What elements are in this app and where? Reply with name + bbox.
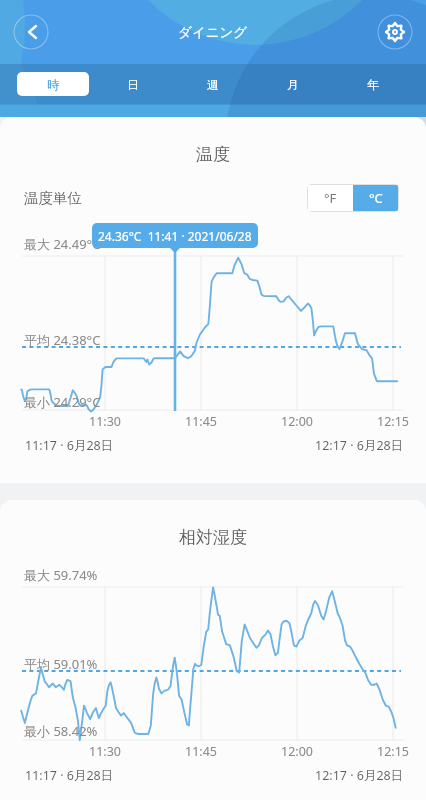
staticText: 11:45 <box>185 413 217 429</box>
button[interactable]: Back <box>13 14 49 50</box>
staticText: 11:30 <box>89 413 121 429</box>
staticText: 12:00 <box>281 743 313 759</box>
staticText: 12:17 · 6月28日 <box>315 767 404 784</box>
button[interactable]: 週 <box>177 72 249 96</box>
staticText: ダイニング <box>178 24 248 41</box>
staticText: °C <box>369 189 383 207</box>
staticText: 11:45 <box>185 743 217 759</box>
staticText: 温度単位 <box>24 189 82 207</box>
staticText: 最小 24.29°C <box>24 393 101 411</box>
staticText: 11:17 · 6月28日 <box>25 767 114 784</box>
button[interactable]: °C <box>353 185 398 211</box>
button[interactable]: 時 <box>17 72 89 96</box>
button[interactable]: Settings <box>377 14 413 50</box>
button[interactable]: °F <box>308 185 353 211</box>
staticText: 年 <box>367 77 379 92</box>
staticText: 11:17 · 6月28日 <box>25 437 114 454</box>
staticText: 最大 59.74% <box>24 566 98 584</box>
staticText: °F <box>324 189 337 207</box>
staticText: 相対湿度 <box>179 527 247 547</box>
staticText: 24.36°C 11:41 · 2021/06/28 <box>98 228 252 244</box>
staticText: 平均 59.01% <box>24 655 98 673</box>
staticText: 12:15 <box>377 413 409 429</box>
button[interactable]: 日 <box>97 72 169 96</box>
staticText: 温度 <box>196 144 230 164</box>
staticText: 時 <box>47 77 59 92</box>
staticText: 12:15 <box>377 743 409 759</box>
button[interactable]: 年 <box>337 72 409 96</box>
staticText: 最小 58.42% <box>24 722 98 740</box>
staticText: 日 <box>127 77 139 92</box>
button[interactable]: 月 <box>257 72 329 96</box>
staticText: 平均 24.38°C <box>24 331 101 349</box>
staticText: 週 <box>207 77 219 92</box>
staticText: 月 <box>287 77 299 92</box>
staticText: 12:00 <box>281 413 313 429</box>
staticText: 11:30 <box>89 743 121 759</box>
staticText: 12:17 · 6月28日 <box>315 437 404 454</box>
staticText: 最大 24.49°C <box>24 235 101 253</box>
